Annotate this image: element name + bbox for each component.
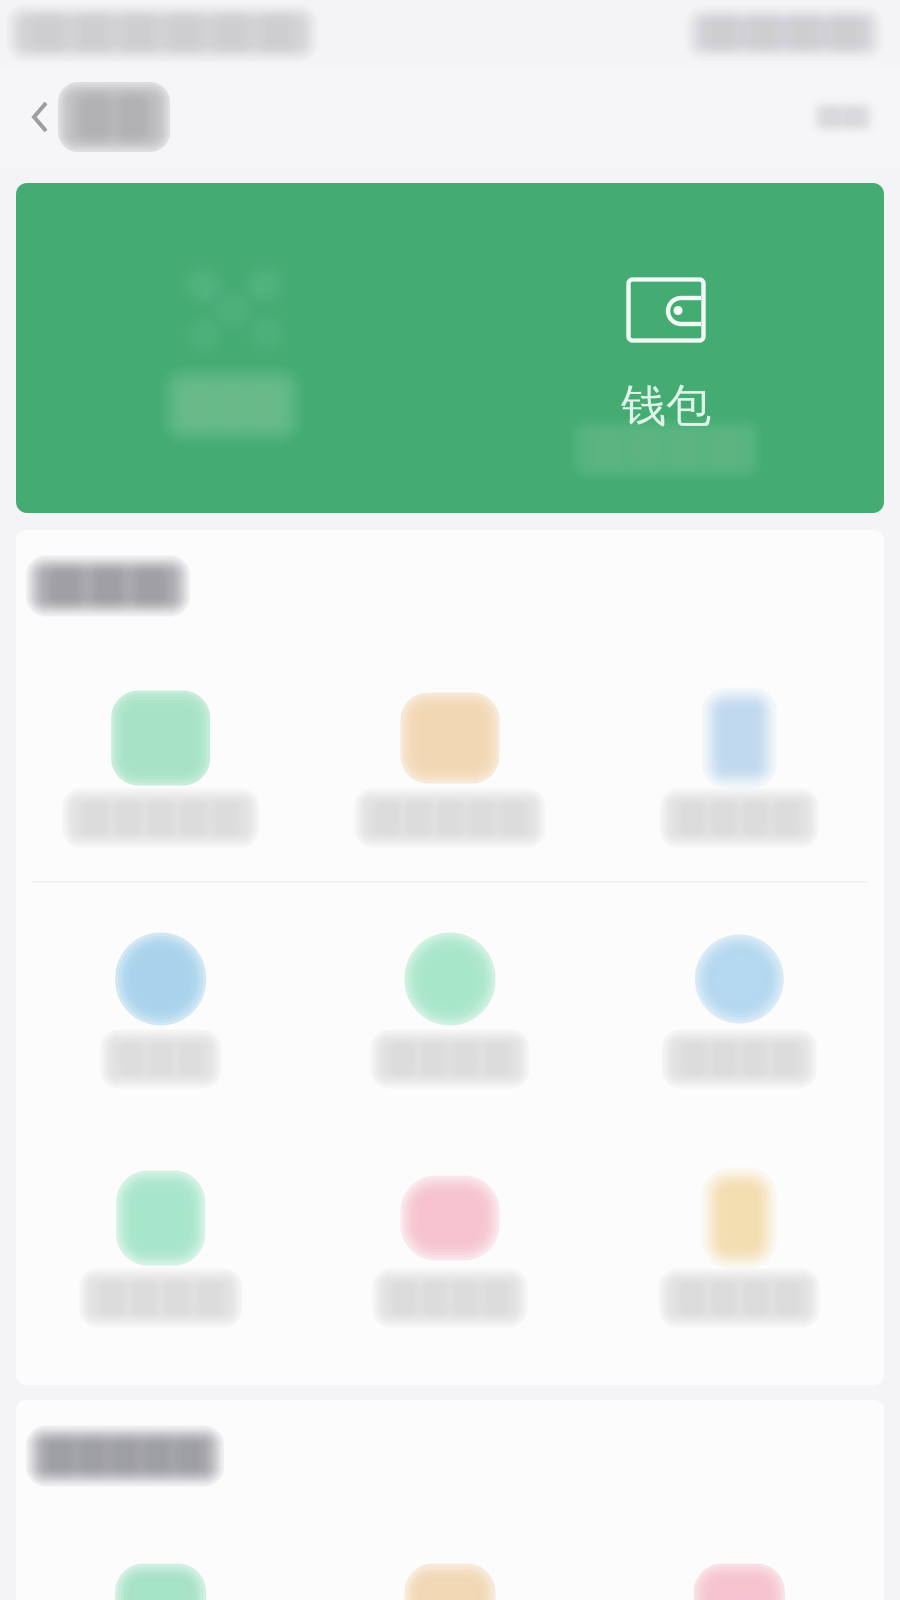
button[interactable]: More: [812, 101, 900, 133]
button[interactable]: [595, 1512, 884, 1600]
button[interactable]: [16, 883, 305, 1122]
button[interactable]: [595, 883, 884, 1122]
button[interactable]: [16, 1122, 305, 1361]
button[interactable]: [305, 883, 595, 1122]
button[interactable]: [16, 1512, 305, 1600]
button[interactable]: [16, 642, 305, 881]
button[interactable]: 钱包: [448, 183, 884, 513]
button[interactable]: [595, 1122, 884, 1361]
button[interactable]: Back: [0, 97, 64, 137]
button[interactable]: [305, 1122, 595, 1361]
button[interactable]: [305, 1512, 595, 1600]
button[interactable]: [595, 642, 884, 881]
button[interactable]: [16, 183, 448, 513]
button[interactable]: [305, 642, 595, 881]
staticText: 钱包: [621, 378, 711, 434]
